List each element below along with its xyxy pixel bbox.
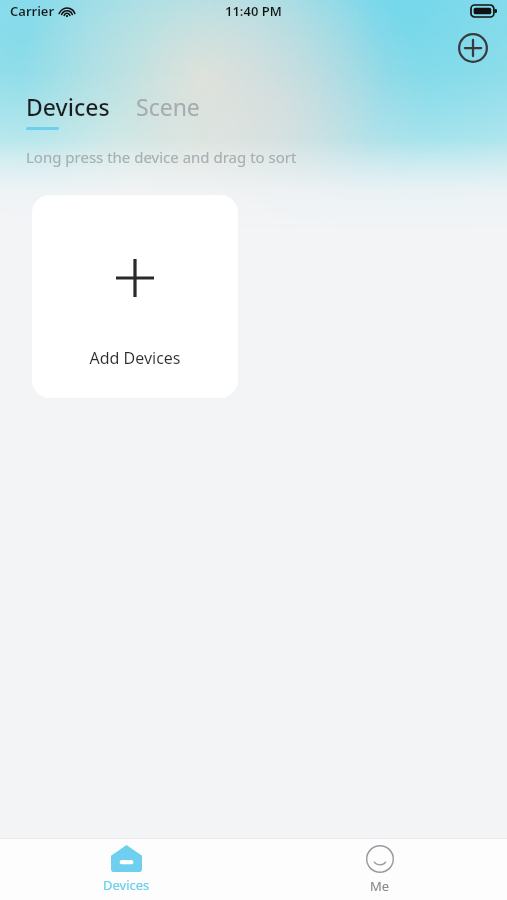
button[interactable]: Me xyxy=(253,839,507,900)
button[interactable]: Scene xyxy=(136,91,200,122)
staticText: Me xyxy=(370,877,390,895)
staticText: Devices xyxy=(103,876,150,894)
staticText: Scene xyxy=(136,91,200,122)
staticText: Long press the device and drag to sort xyxy=(26,147,297,167)
button[interactable]: Devices xyxy=(26,91,110,130)
staticText: Carrier xyxy=(10,2,55,20)
staticText: Devices xyxy=(26,91,110,122)
staticText: Add Devices xyxy=(89,347,181,369)
staticText: 11:40 PM xyxy=(225,2,282,20)
button[interactable]: Add Devices xyxy=(32,195,238,398)
button[interactable]: Add xyxy=(455,30,491,66)
button[interactable]: Devices xyxy=(0,839,253,900)
